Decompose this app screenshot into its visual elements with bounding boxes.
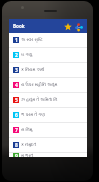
button[interactable]: 2 [9,48,87,63]
staticText: અ સ્વર સૃષ્ટિ [21,37,43,43]
staticText: ક નિયમ અર્થ [21,67,45,73]
button[interactable]: 4 [9,78,87,93]
staticText: બ ગણુ [21,52,33,58]
button[interactable]: 3 [9,63,87,78]
staticText: 8 [15,142,18,148]
staticText: 3 [15,67,18,73]
staticText: 9 [15,153,18,157]
button[interactable]: 1 [9,33,87,48]
button[interactable]: 6 [9,108,87,123]
button[interactable]: Favourite [62,21,73,32]
staticText: 4 [15,82,18,88]
staticText: Book [13,23,25,29]
button[interactable]: Share [73,21,84,32]
button[interactable]: 9 [9,153,87,157]
staticText: 7 [15,127,18,133]
button[interactable]: 7 [9,123,87,138]
button[interactable]: 8 [9,138,87,153]
staticText: ક નમુદત [21,142,37,148]
staticText: ઝ હનુમ તે અમિતા નિ [21,97,58,103]
staticText: 1 [15,37,18,43]
button[interactable]: 5 [9,93,87,108]
staticText: મ ભરત [21,153,34,157]
staticText: 2 [15,52,18,58]
staticText: સ નિમુ [21,127,33,133]
staticText: ભ પરમ તે ગણ [21,112,45,118]
staticText: ય ઉપર મહીનિ અનુમ [21,82,58,88]
staticText: 5 [15,97,18,103]
staticText: 6 [15,112,18,118]
